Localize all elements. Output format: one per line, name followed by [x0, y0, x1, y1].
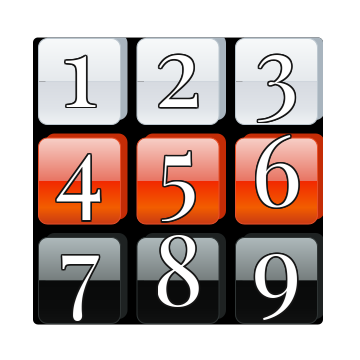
staticText: 5 [156, 98, 197, 230]
staticText: 8 [152, 201, 203, 332]
button[interactable]: 9 [235, 237, 317, 323]
staticText: 9 [251, 201, 301, 332]
staticText: 6 [252, 100, 303, 231]
staticText: 9 [250, 199, 300, 331]
staticText: 9 [250, 198, 300, 329]
staticText: 6 [251, 98, 302, 230]
staticText: 4 [56, 98, 105, 230]
staticText: 6 [251, 100, 302, 231]
staticText: 9 [253, 200, 303, 332]
staticText: 3 [256, 1, 300, 133]
button[interactable]: 2 [137, 38, 219, 124]
staticText: 7 [58, 199, 98, 331]
staticText: 3 [256, 0, 300, 132]
staticText: 9 [251, 199, 301, 331]
staticText: 3 [256, 0, 300, 130]
staticText: 3 [253, 0, 297, 132]
staticText: 4 [56, 100, 105, 231]
staticText: 1 [60, 1, 97, 133]
staticText: 1 [60, 0, 97, 130]
staticText: 6 [252, 98, 303, 230]
staticText: 6 [250, 98, 301, 230]
staticText: 6 [250, 100, 301, 231]
staticText: 5 [159, 100, 200, 231]
button[interactable]: 8 [137, 237, 219, 323]
staticText: 2 [156, 1, 203, 133]
staticText: 3 [254, 0, 298, 132]
button[interactable]: 6 [235, 138, 317, 224]
staticText: 1 [62, 1, 99, 133]
staticText: 7 [59, 199, 99, 331]
button[interactable]: 4 [38, 138, 120, 224]
staticText: 2 [153, 1, 200, 133]
staticText: 3 [253, 1, 297, 133]
staticText: 2 [153, 0, 200, 132]
button[interactable]: 3 [235, 38, 317, 124]
staticText: 4 [54, 98, 103, 230]
staticText: 4 [55, 98, 104, 230]
staticText: 2 [156, 0, 203, 130]
staticText: 9 [253, 198, 303, 329]
staticText: 1 [62, 0, 99, 130]
staticText: 5 [159, 98, 200, 230]
staticText: 6 [252, 101, 303, 232]
staticText: 9 [253, 199, 303, 331]
staticText: 5 [159, 101, 200, 232]
staticText: 4 [55, 100, 104, 231]
staticText: 2 [154, 0, 201, 130]
staticText: 4 [54, 100, 103, 231]
button[interactable]: 7 [38, 237, 120, 323]
staticText: 5 [157, 100, 198, 231]
staticText: 8 [152, 198, 203, 329]
staticText: 1 [61, 0, 98, 130]
staticText: 1 [60, 0, 97, 132]
staticText: 2 [154, 0, 201, 132]
staticText: 6 [250, 101, 301, 232]
staticText: 1 [61, 0, 98, 132]
staticText: 1 [61, 2, 98, 133]
staticText: 7 [58, 200, 98, 332]
staticText: 8 [151, 199, 202, 331]
button[interactable]: 1 [38, 38, 120, 124]
staticText: 9 [251, 198, 301, 329]
staticText: 2 [156, 0, 203, 132]
staticText: 4 [54, 101, 103, 232]
staticText: 2 [154, 2, 201, 133]
button[interactable]: 5 [137, 138, 219, 224]
staticText: 5 [157, 101, 198, 233]
staticText: 3 [253, 0, 297, 130]
staticText: 7 [61, 198, 101, 329]
staticText: 7 [58, 198, 98, 329]
staticText: 3 [254, 2, 298, 133]
staticText: 6 [251, 101, 302, 233]
staticText: 8 [154, 199, 205, 331]
staticText: 1 [62, 0, 99, 132]
staticText: 7 [61, 200, 101, 332]
staticText: 8 [151, 200, 202, 332]
staticText: 8 [154, 200, 205, 332]
staticText: 5 [157, 98, 198, 230]
staticText: 9 [250, 200, 300, 332]
staticText: 4 [56, 101, 105, 232]
staticText: 8 [152, 199, 203, 331]
staticText: 7 [59, 201, 99, 332]
staticText: 3 [254, 0, 298, 130]
staticText: 7 [61, 199, 101, 331]
staticText: 2 [153, 0, 200, 130]
staticText: 5 [156, 100, 197, 231]
staticText: 7 [59, 198, 99, 329]
staticText: 8 [151, 198, 202, 329]
staticText: 4 [55, 101, 104, 233]
staticText: 5 [156, 101, 197, 232]
staticText: 8 [154, 198, 205, 329]
